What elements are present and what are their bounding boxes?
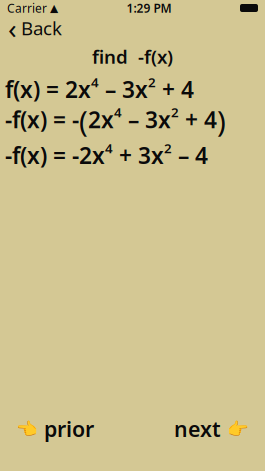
staticText: 4	[91, 73, 99, 91]
staticText: 2	[164, 139, 172, 157]
staticText: 👈	[16, 419, 38, 439]
staticText: ▲	[50, 2, 58, 14]
staticText: Back	[21, 16, 62, 40]
staticText: + 3x	[113, 140, 164, 170]
staticText: + 4	[179, 104, 217, 134]
staticText: (	[79, 101, 88, 140]
staticText: find -f(x)	[92, 44, 173, 69]
button[interactable]: 👈	[10, 411, 100, 447]
staticText: -f(x) = -2x	[5, 140, 105, 170]
staticText: Carrier	[7, 0, 47, 16]
button[interactable]: next	[168, 411, 255, 447]
staticText: -f(x) = -	[5, 104, 79, 134]
staticText: f(x) = 2x	[5, 74, 91, 104]
staticText: prior	[44, 415, 94, 443]
staticText: 1:29 PM	[126, 0, 171, 16]
staticText: 4	[105, 139, 113, 157]
staticText: – 4	[172, 140, 208, 170]
staticText: 2x	[88, 104, 114, 134]
staticText: – 3x	[99, 74, 148, 104]
staticText: )	[217, 101, 226, 140]
staticText: 4	[114, 103, 122, 121]
staticText: ‹	[8, 9, 17, 47]
staticText: 2	[171, 103, 179, 121]
button[interactable]: ‹	[0, 16, 265, 40]
staticText: + 4	[156, 74, 194, 104]
staticText: next	[174, 415, 221, 443]
staticText: 2	[148, 73, 156, 91]
staticText: 👉	[227, 419, 249, 439]
staticText: – 3x	[122, 104, 171, 134]
